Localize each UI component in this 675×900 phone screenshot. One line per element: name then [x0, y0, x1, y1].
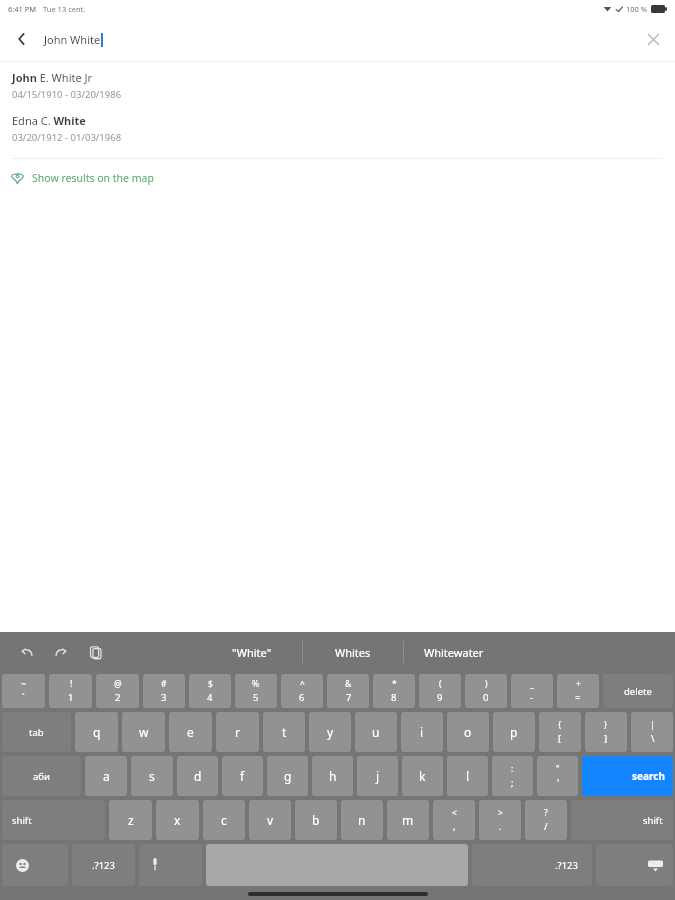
button[interactable]: ~ [2, 674, 45, 708]
button[interactable]: x [156, 800, 199, 840]
button[interactable]: " [537, 756, 578, 796]
staticText: > [498, 807, 503, 819]
button[interactable]: Emoji [2, 844, 68, 886]
button[interactable]: > [479, 800, 521, 840]
button[interactable]: $ [189, 674, 231, 708]
staticText: { [558, 719, 562, 731]
staticText: b [312, 812, 320, 828]
button[interactable]: j [357, 756, 398, 796]
button[interactable]: ( [419, 674, 461, 708]
button[interactable]: ! [49, 674, 92, 708]
staticText: | [650, 719, 655, 731]
button[interactable]: } [585, 712, 627, 752]
button[interactable]: Back [0, 17, 44, 61]
staticText: m [402, 812, 414, 828]
staticText: 6:41 PM [8, 4, 37, 14]
staticText: j [376, 768, 380, 784]
button[interactable]: i [401, 712, 443, 752]
button[interactable]: l [447, 756, 488, 796]
button[interactable]: h [312, 756, 353, 796]
button[interactable]: Hide keyboard [596, 844, 673, 886]
button[interactable]: Voice input [139, 844, 202, 886]
button[interactable]: ? [525, 800, 567, 840]
button[interactable]: # [143, 674, 185, 708]
button[interactable]: s [131, 756, 173, 796]
button[interactable]: @ [96, 674, 139, 708]
button[interactable]: e [169, 712, 212, 752]
staticText: a [103, 768, 110, 784]
button[interactable]: Show results on the map [0, 159, 675, 197]
staticText: ^ [300, 678, 305, 690]
button[interactable]: < [433, 800, 475, 840]
button[interactable]: v [249, 800, 291, 840]
staticText: John White [44, 32, 101, 47]
staticText: y [327, 724, 334, 740]
button[interactable]: * [373, 674, 415, 708]
staticText: Show results on the map [32, 171, 154, 185]
button[interactable]: shift [2, 800, 105, 840]
button[interactable]: Whitewater [404, 632, 504, 672]
staticText: p [510, 724, 518, 740]
staticText: search [632, 769, 665, 783]
staticText: f [240, 768, 245, 784]
button[interactable]: аби [2, 756, 81, 796]
button[interactable]: z [109, 800, 152, 840]
button[interactable]: "White" [202, 632, 302, 672]
button[interactable]: b [295, 800, 337, 840]
button[interactable]: r [216, 712, 259, 752]
button[interactable]: ^ [281, 674, 323, 708]
button[interactable]: { [539, 712, 581, 752]
button[interactable]: f [222, 756, 263, 796]
button[interactable]: m [387, 800, 429, 840]
button[interactable]: u [355, 712, 397, 752]
staticText: [ [558, 732, 562, 745]
button[interactable]: tab [2, 712, 71, 752]
button[interactable]: Undo [14, 639, 40, 665]
staticText: 3 [161, 691, 167, 704]
button[interactable]: search [582, 756, 673, 796]
staticText: z [128, 812, 134, 828]
button[interactable]: y [309, 712, 351, 752]
button[interactable]: o [447, 712, 489, 752]
button[interactable]: + [557, 674, 599, 708]
button[interactable]: shift [571, 800, 673, 840]
button[interactable]: .?123 [72, 844, 135, 886]
button[interactable]: q [75, 712, 118, 752]
button[interactable]: | [631, 712, 673, 752]
button[interactable]: Clear [631, 17, 675, 61]
staticText: e [187, 724, 194, 740]
staticText: ' [557, 776, 560, 789]
button[interactable]: c [203, 800, 245, 840]
staticText: ` [22, 691, 25, 704]
button[interactable]: t [263, 712, 305, 752]
button[interactable]: g [267, 756, 308, 796]
button[interactable]: & [327, 674, 369, 708]
button[interactable]: p [493, 712, 535, 752]
staticText: l [466, 768, 470, 784]
button[interactable]: John E. White Jr [0, 70, 675, 101]
staticText: s [149, 768, 155, 784]
button[interactable]: d [177, 756, 218, 796]
button[interactable]: % [235, 674, 277, 708]
button[interactable]: Clipboard [82, 639, 108, 665]
staticText: _ [530, 678, 534, 690]
staticText: g [284, 768, 292, 784]
button[interactable]: .?123 [472, 844, 592, 886]
button[interactable]: a [85, 756, 127, 796]
button[interactable]: delete [603, 674, 673, 708]
button[interactable]: n [341, 800, 383, 840]
button[interactable]: : [492, 756, 533, 796]
staticText: Whitewater [424, 645, 484, 660]
button[interactable]: _ [511, 674, 553, 708]
staticText: q [93, 724, 101, 740]
button[interactable]: w [122, 712, 165, 752]
staticText: 04/15/1910 - 03/20/1986 [12, 88, 122, 101]
button[interactable]: ) [465, 674, 507, 708]
button[interactable]: k [402, 756, 443, 796]
button[interactable]: Redo [48, 639, 74, 665]
staticText: x [174, 812, 181, 828]
staticText: : [511, 763, 514, 775]
button[interactable]: Edna C. White [0, 113, 675, 144]
button[interactable]: Whites [303, 632, 403, 672]
